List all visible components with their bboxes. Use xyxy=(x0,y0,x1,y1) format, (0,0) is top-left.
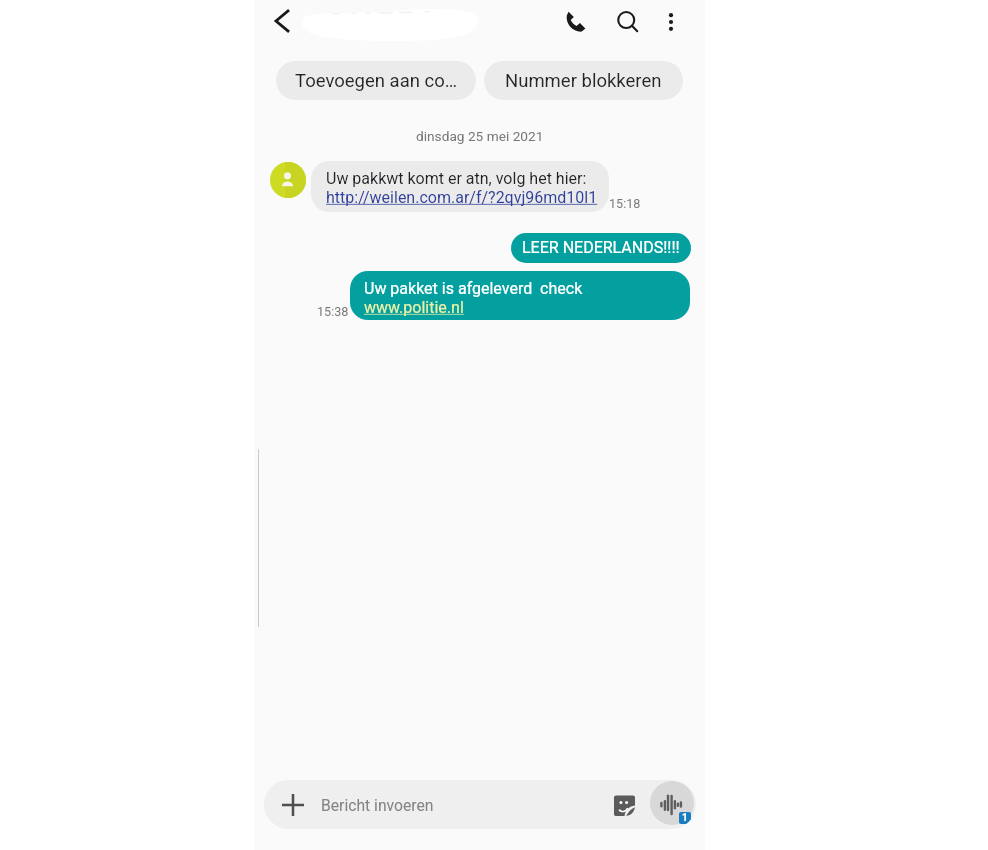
button[interactable]: Uw pakket is afgeleverd check xyxy=(350,271,690,320)
staticText: Uw pakkwt komt er atn, volg het hier: xyxy=(326,169,587,188)
staticText: LEER NEDERLANDS!!!! xyxy=(522,238,680,257)
button[interactable]: Add attachment xyxy=(271,783,315,827)
button[interactable]: Search xyxy=(608,2,648,42)
button[interactable]: Uw pakkwt komt er atn, volg het hier: xyxy=(311,161,609,212)
staticText: Toevoegen aan co… xyxy=(295,70,458,92)
button[interactable]: Nummer blokkeren xyxy=(484,61,683,100)
button[interactable]: Voice message xyxy=(650,781,694,825)
button[interactable]: LEER NEDERLANDS!!!! xyxy=(511,233,691,263)
staticText: Bericht invoeren xyxy=(321,796,434,814)
button[interactable]: Call xyxy=(555,1,595,41)
staticText: dinsdag 25 mei 2021 xyxy=(416,128,544,144)
staticText: 15:18 xyxy=(609,196,641,211)
staticText: Uw pakket is afgeleverd check xyxy=(364,279,583,298)
button[interactable]: Toevoegen aan co… xyxy=(276,61,476,100)
staticText: 15:38 xyxy=(317,304,349,319)
button[interactable]: Back xyxy=(262,1,302,41)
staticText: http://weilen.com.ar/f/?2qvj96md10l1 xyxy=(326,188,598,207)
button[interactable]: More options xyxy=(651,2,691,42)
staticText: www.politie.nl xyxy=(364,298,464,317)
staticText: 1 xyxy=(682,812,688,824)
button[interactable]: Stickers xyxy=(602,783,646,827)
staticText: Nummer blokkeren xyxy=(505,70,662,92)
